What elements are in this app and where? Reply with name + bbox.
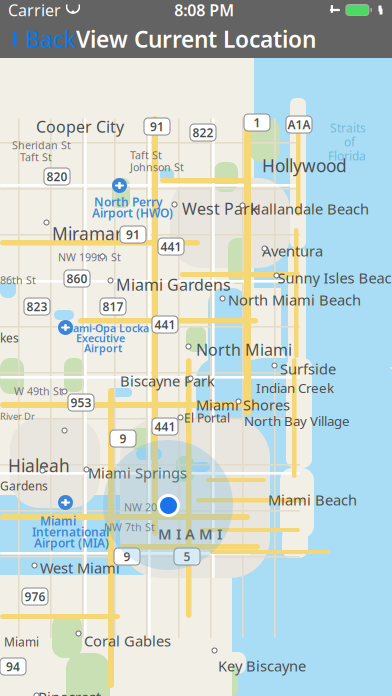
staticText: Indian Creek	[256, 379, 334, 397]
button[interactable]: Back	[0, 20, 86, 58]
staticText: North Miami Beach	[228, 290, 361, 309]
staticText: 91	[126, 226, 140, 242]
staticText: Airport (MIA)	[34, 535, 109, 551]
staticText: Pinecrest	[38, 687, 101, 696]
staticText: Miramar	[52, 222, 122, 245]
staticText: Miami	[4, 634, 39, 650]
staticText: Key Biscayne	[218, 656, 306, 675]
staticText: Johnson St	[130, 160, 184, 174]
staticText: Miami-Opa Locka	[60, 321, 149, 335]
staticText: Gardens	[0, 478, 48, 494]
staticText: View Current Location	[76, 24, 316, 54]
staticText: Miami Beach	[268, 490, 357, 509]
staticText: Miami	[40, 513, 76, 529]
staticText: Aventura	[262, 241, 323, 260]
staticText: NW 7th St	[104, 520, 155, 534]
staticText: North Miami	[196, 339, 292, 360]
staticText: Taft St	[20, 150, 52, 164]
staticText: 1	[253, 114, 260, 130]
staticText: NW 199th St	[58, 250, 121, 264]
staticText: 820	[46, 168, 67, 184]
staticText: Surfside	[280, 359, 336, 378]
staticText: El Portal	[184, 410, 230, 426]
staticText: Sunny Isles Beach	[277, 268, 392, 287]
staticText: North Bay Village	[244, 412, 350, 430]
staticText: 976	[24, 588, 45, 604]
staticText: of	[344, 134, 355, 150]
staticText: Hallandale Beach	[250, 199, 369, 218]
staticText: 8:08 PM	[174, 0, 234, 21]
staticText: West Miami	[40, 558, 120, 577]
staticText: 94	[6, 658, 20, 674]
staticText: West Park	[182, 198, 259, 219]
staticText: W 49th St	[14, 384, 63, 398]
staticText: 86th St	[0, 273, 36, 287]
staticText: 860	[66, 270, 87, 286]
staticText: kes	[0, 330, 19, 346]
staticText: Carrier	[8, 0, 61, 21]
staticText: 441	[160, 238, 181, 254]
staticText: Coral Gables	[84, 631, 171, 650]
staticText: 822	[192, 124, 213, 140]
staticText: NW 20th	[124, 500, 168, 514]
staticText: 9	[119, 430, 126, 446]
staticText: 9	[123, 548, 130, 564]
staticText: Florida	[328, 148, 366, 164]
staticText: Hollywood	[262, 154, 347, 177]
staticText: 953	[70, 394, 91, 410]
staticText: Sheridan St	[12, 138, 71, 152]
staticText: 5	[183, 548, 190, 564]
staticText: Biscayne Park	[120, 371, 215, 390]
staticText: 91	[150, 118, 164, 134]
staticText: Miami Shores	[196, 395, 290, 414]
staticText: Straits	[330, 120, 366, 136]
staticText: 441	[154, 316, 175, 332]
staticText: Miami Gardens	[116, 274, 231, 295]
staticText: International	[32, 524, 109, 540]
staticText: 823	[26, 298, 47, 314]
staticText: Taft St	[130, 148, 162, 162]
staticText: Back	[25, 24, 76, 54]
staticText: 441	[154, 418, 175, 434]
staticText: Airport (HWO)	[92, 205, 173, 221]
staticText: Miami Springs	[88, 463, 187, 482]
staticText: River Dr	[0, 410, 35, 422]
staticText: 817	[102, 298, 123, 314]
staticText: North Perry	[94, 194, 163, 210]
staticText: M I A M I	[158, 524, 222, 543]
staticText: Cooper City	[36, 116, 124, 137]
staticText: Hialeah	[8, 454, 70, 477]
staticText: A1A	[287, 116, 310, 132]
staticText: Airport	[84, 341, 122, 355]
staticText: Executive	[76, 331, 125, 345]
